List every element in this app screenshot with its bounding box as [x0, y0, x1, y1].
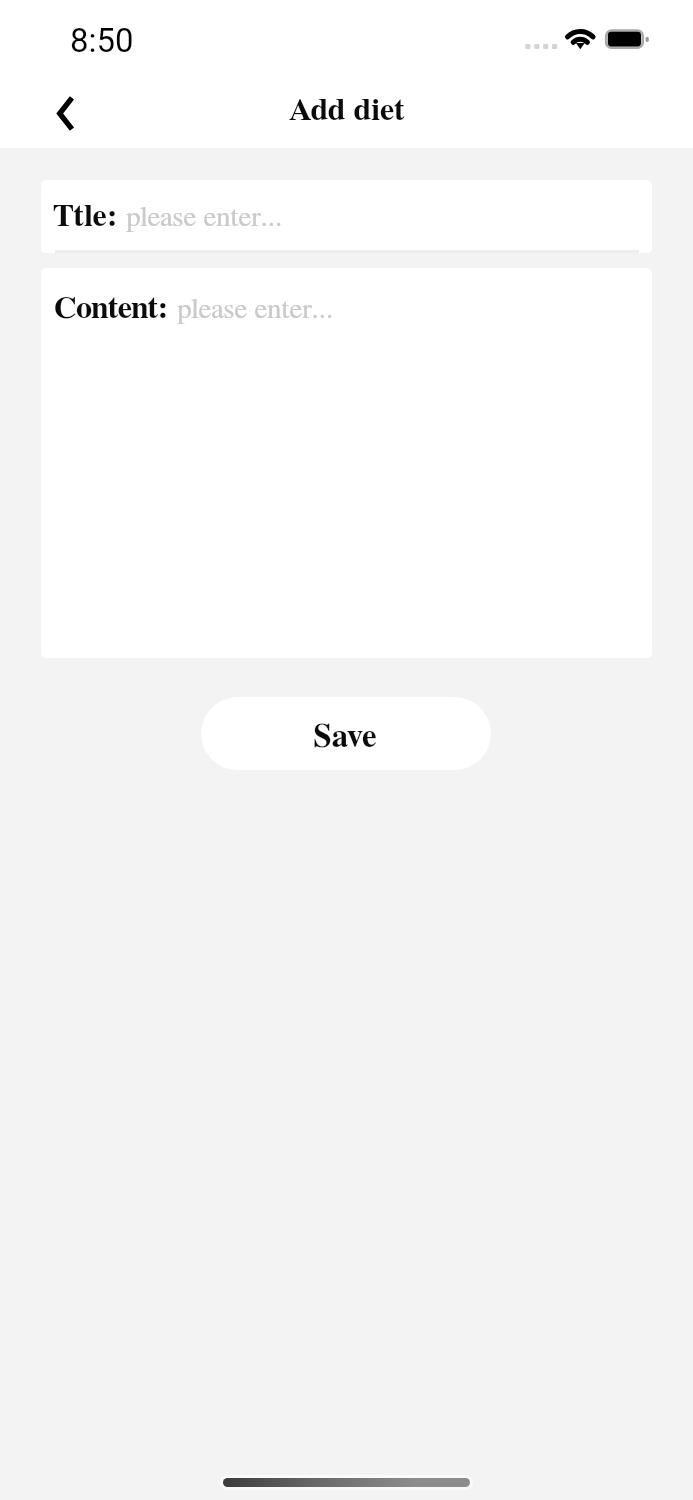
- staticText: Ttle:: [53, 200, 118, 232]
- button[interactable]: Back: [37, 89, 93, 137]
- button[interactable]: Save: [201, 697, 491, 770]
- staticText: 8:50: [70, 21, 134, 60]
- button[interactable]: Content:: [41, 268, 652, 658]
- staticText: please enter...: [126, 203, 283, 232]
- staticText: Add diet: [289, 94, 405, 126]
- button[interactable]: Ttle:: [41, 180, 652, 253]
- staticText: Content:: [54, 292, 168, 324]
- staticText: please enter...: [177, 295, 334, 324]
- staticText: Save: [313, 721, 377, 754]
